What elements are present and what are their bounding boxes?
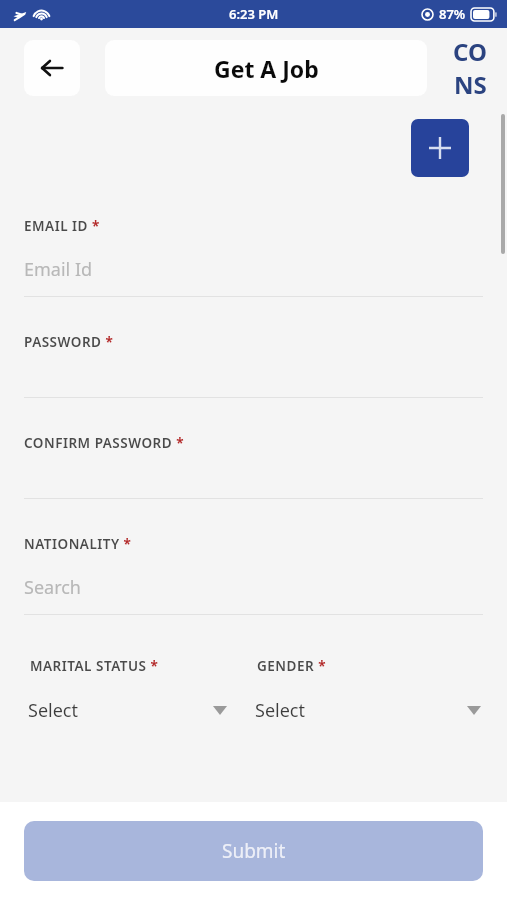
staticText: GENDER * <box>257 657 326 675</box>
staticText: MARITAL STATUS * <box>30 657 159 675</box>
staticText: CO <box>453 35 487 68</box>
staticText: EMAIL ID * <box>24 217 100 235</box>
button[interactable]: Select <box>255 698 481 723</box>
staticText: Select <box>28 698 78 723</box>
staticText: Get A Job <box>214 53 319 84</box>
button[interactable]: CONS logo <box>443 35 497 101</box>
staticText: NATIONALITY * <box>24 535 132 553</box>
staticText: CONFIRM PASSWORD * <box>24 434 184 452</box>
staticText: NS <box>454 68 487 101</box>
button[interactable]: Email Id <box>24 257 507 282</box>
button[interactable]: Get A Job <box>105 40 427 96</box>
staticText: 6:23 PM <box>229 5 279 23</box>
staticText: Search <box>24 575 81 600</box>
staticText: PASSWORD * <box>24 333 114 351</box>
staticText: Select <box>255 698 305 723</box>
staticText: Email Id <box>24 257 93 282</box>
button[interactable]: Submit <box>24 821 483 881</box>
button[interactable]: Add <box>411 119 469 177</box>
staticText: 87% <box>439 5 466 23</box>
button[interactable]: Back <box>24 40 80 96</box>
button[interactable]: Search <box>24 575 507 600</box>
staticText: Submit <box>222 838 286 864</box>
button[interactable]: Select <box>28 698 227 723</box>
